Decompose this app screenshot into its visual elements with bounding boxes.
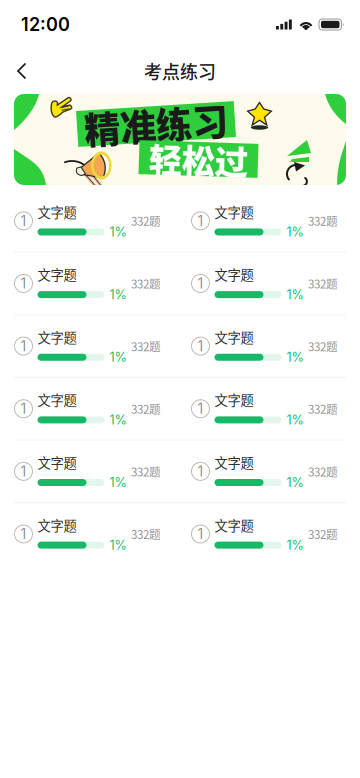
staticText: 332题 xyxy=(131,275,161,292)
staticText: 332题 xyxy=(308,338,338,354)
staticText: 1 xyxy=(20,338,26,354)
staticText: 轻松过 xyxy=(149,135,248,183)
staticText: 1% xyxy=(286,224,303,240)
staticText: 1% xyxy=(109,537,126,553)
staticText: 文字题 xyxy=(37,390,76,409)
staticText: 1% xyxy=(286,287,303,302)
button[interactable]: 1 xyxy=(14,390,161,427)
staticText: 1 xyxy=(197,338,203,354)
staticText: 1% xyxy=(286,537,303,553)
staticText: 1 xyxy=(197,463,203,480)
staticText: 1 xyxy=(197,525,203,542)
staticText: 文字题 xyxy=(214,327,253,347)
staticText: 332题 xyxy=(308,275,338,292)
button[interactable]: 1 xyxy=(191,452,338,490)
staticText: 文字题 xyxy=(37,515,76,534)
staticText: 332题 xyxy=(131,463,161,480)
staticText: 考点练习 xyxy=(144,58,216,84)
staticText: 332题 xyxy=(308,212,338,229)
staticText: 332题 xyxy=(308,526,338,542)
staticText: 1% xyxy=(109,475,126,490)
button[interactable]: 1 xyxy=(14,327,161,365)
staticText: 332题 xyxy=(131,212,161,229)
staticText: 文字题 xyxy=(37,327,76,347)
staticText: 332题 xyxy=(131,526,161,542)
staticText: 12:00 xyxy=(21,14,70,35)
staticText: 1 xyxy=(20,212,26,229)
staticText: 文字题 xyxy=(37,265,76,284)
button[interactable]: 1 xyxy=(14,265,161,302)
staticText: 1 xyxy=(20,525,26,542)
staticText: 1 xyxy=(197,212,203,229)
staticText: 文字题 xyxy=(214,390,253,409)
button[interactable]: 1 xyxy=(191,515,338,553)
staticText: 332题 xyxy=(308,400,338,417)
staticText: 1% xyxy=(286,350,303,365)
staticText: 文字题 xyxy=(214,265,253,284)
staticText: 1 xyxy=(197,275,203,292)
button[interactable]: 1 xyxy=(14,452,161,490)
staticText: 文字题 xyxy=(37,202,76,221)
button[interactable]: 1 xyxy=(191,390,338,427)
staticText: 1 xyxy=(20,275,26,292)
button[interactable]: 1 xyxy=(191,327,338,365)
button[interactable]: 1 xyxy=(191,202,338,240)
staticText: 1% xyxy=(109,350,126,365)
button[interactable]: 1 xyxy=(14,515,161,553)
staticText: 1 xyxy=(20,463,26,480)
staticText: 1% xyxy=(109,224,126,240)
staticText: 332题 xyxy=(131,338,161,354)
staticText: 1% xyxy=(109,412,126,427)
staticText: 文字题 xyxy=(214,515,253,534)
staticText: 精准练习 xyxy=(84,98,228,150)
staticText: 1% xyxy=(286,412,303,427)
staticText: 文字题 xyxy=(37,452,76,472)
staticText: 1 xyxy=(20,400,26,417)
staticText: 332题 xyxy=(131,400,161,417)
staticText: 1% xyxy=(109,287,126,302)
button[interactable]: 1 xyxy=(191,265,338,302)
staticText: 文字题 xyxy=(214,452,253,472)
staticText: 文字题 xyxy=(214,202,253,221)
button[interactable]: 1 xyxy=(14,202,161,240)
staticText: 1% xyxy=(286,475,303,490)
staticText: 332题 xyxy=(308,463,338,480)
button[interactable]: Back xyxy=(0,51,42,91)
staticText: 1 xyxy=(197,400,203,417)
